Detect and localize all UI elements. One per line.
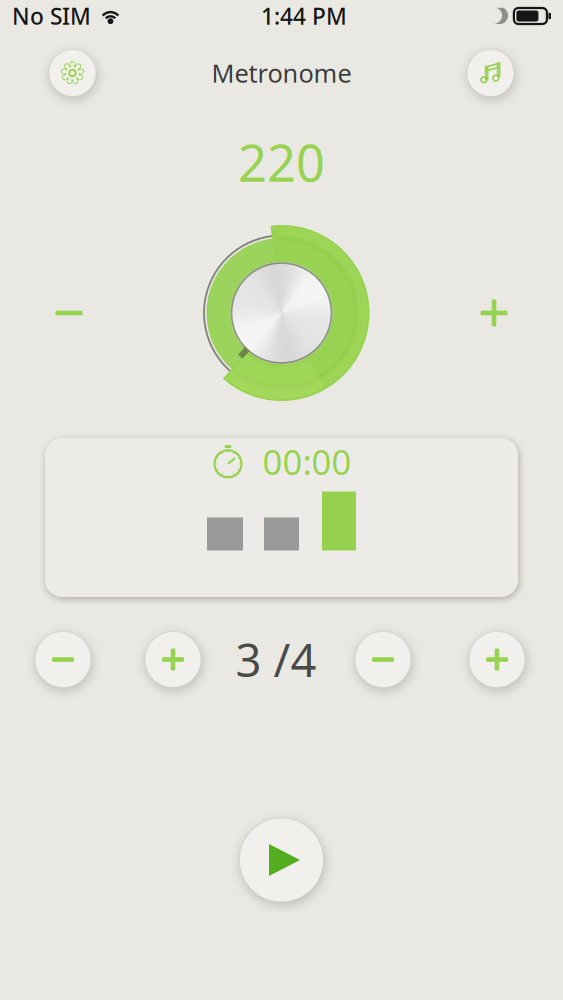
button[interactable]: Decrease tempo [44,288,94,338]
staticText: 3 /4 [235,629,316,690]
staticText: 1:44 PM [261,1,347,31]
staticText: No SIM [12,1,91,31]
button[interactable]: Play [234,813,328,907]
staticText: 00:00 [262,438,351,484]
staticText: 220 [238,128,325,196]
button[interactable]: Increase tempo [469,288,519,338]
button[interactable]: Decrease beats [30,626,96,692]
button[interactable]: Increase beats [140,626,206,692]
button[interactable]: Decrease note value [350,626,416,692]
button[interactable]: Sounds [462,44,519,101]
button[interactable]: Settings [44,44,101,101]
button[interactable]: Increase note value [464,626,530,692]
staticText: Metronome [211,56,351,90]
